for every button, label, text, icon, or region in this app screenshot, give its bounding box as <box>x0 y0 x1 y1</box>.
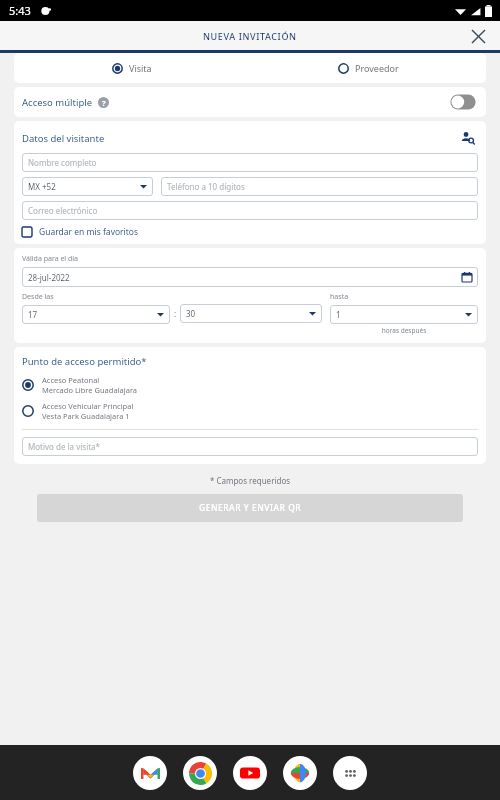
button[interactable]: Guardar en mis favoritos <box>22 226 478 238</box>
staticText: Visita <box>129 62 152 74</box>
staticText: Motivo de la visita* <box>28 441 472 452</box>
staticText: hasta <box>330 292 349 302</box>
staticText: Guardar en mis favoritos <box>39 226 139 238</box>
staticText: : <box>174 308 177 319</box>
button[interactable]: YouTube <box>233 756 267 790</box>
button[interactable]: 1 <box>330 305 478 324</box>
staticText: Nombre completo <box>28 157 472 168</box>
staticText: Teléfono a 10 dígitos <box>167 181 472 192</box>
button[interactable]: 17 <box>22 305 170 324</box>
staticText: ? <box>102 98 106 108</box>
button[interactable]: MX +52 <box>22 177 153 196</box>
button[interactable]: Acceso múltiple <box>448 92 478 112</box>
button[interactable]: Visita <box>14 53 250 83</box>
button[interactable]: Correo electrónico <box>22 201 478 220</box>
staticText: Válida para el día <box>22 254 78 264</box>
staticText: Vesta Park Guadalajara 1 <box>42 411 130 421</box>
button[interactable]: Proveedor <box>250 53 486 83</box>
button[interactable]: Gmail <box>133 756 167 790</box>
staticText: 28-jul-2022 <box>28 272 462 283</box>
staticText: 5:43 <box>9 3 31 18</box>
button[interactable]: Chrome <box>183 756 217 790</box>
staticText: MX +52 <box>28 181 140 192</box>
button[interactable]: Cerrar <box>464 22 492 50</box>
button[interactable]: Aplicaciones <box>333 756 367 790</box>
staticText: Acceso Peatonal <box>42 375 100 385</box>
button[interactable]: Nombre completo <box>22 153 478 172</box>
staticText: 17 <box>28 309 157 320</box>
button[interactable]: GENERAR Y ENVIAR QR <box>37 494 463 522</box>
staticText: Punto de acceso permitido* <box>22 355 147 368</box>
staticText: Acceso Vehicular Principal <box>42 401 134 411</box>
staticText: * Campos requeridos <box>0 475 500 486</box>
button[interactable]: Google Photos <box>283 756 317 790</box>
staticText: 1 <box>336 309 465 320</box>
staticText: horas después <box>330 326 478 335</box>
staticText: NUEVA INVITACIÓN <box>203 30 297 42</box>
button[interactable]: Teléfono a 10 dígitos <box>161 177 478 196</box>
button[interactable]: Buscar visitante <box>458 128 478 148</box>
staticText: Correo electrónico <box>28 205 472 216</box>
button[interactable]: 30 <box>180 304 322 323</box>
button[interactable]: Acceso Peatonal <box>22 375 478 395</box>
button[interactable]: 28-jul-2022 <box>22 267 478 287</box>
button[interactable]: Motivo de la visita* <box>22 437 478 456</box>
staticText: Proveedor <box>355 62 399 74</box>
button[interactable]: Ayuda <box>98 97 109 108</box>
staticText: Desde las <box>22 292 54 302</box>
staticText: GENERAR Y ENVIAR QR <box>199 502 302 514</box>
staticText: Acceso múltiple <box>22 96 93 109</box>
button[interactable]: Acceso Vehicular Principal <box>22 401 478 421</box>
staticText: 30 <box>186 308 309 319</box>
staticText: Datos del visitante <box>22 132 105 145</box>
staticText: Mercado Libre Guadalajara <box>42 385 138 395</box>
